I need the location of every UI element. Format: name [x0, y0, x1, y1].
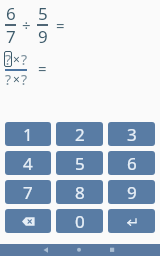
- button[interactable]: 1: [5, 122, 51, 146]
- staticText: 3: [127, 123, 137, 146]
- staticText: =: [56, 15, 65, 35]
- button[interactable]: 9: [108, 180, 155, 204]
- staticText: 8: [75, 181, 85, 204]
- button[interactable]: [108, 209, 155, 233]
- button[interactable]: [5, 209, 51, 233]
- staticText: ?: [21, 70, 28, 89]
- staticText: 1: [23, 123, 33, 146]
- staticText: ?: [5, 50, 12, 69]
- staticText: ×: [13, 51, 20, 67]
- staticText: ?: [21, 50, 28, 69]
- button[interactable]: 5: [56, 151, 103, 175]
- staticText: 7: [23, 181, 33, 204]
- staticText: 5: [38, 2, 48, 25]
- staticText: ÷: [22, 15, 31, 35]
- staticText: 7: [6, 25, 16, 48]
- staticText: 6: [6, 2, 16, 25]
- button[interactable]: 2: [56, 122, 103, 146]
- staticText: ?: [5, 70, 12, 89]
- button[interactable]: 3: [108, 122, 155, 146]
- staticText: =: [38, 58, 47, 78]
- button[interactable]: 7: [5, 180, 51, 204]
- staticText: 0: [75, 210, 85, 233]
- staticText: 2: [75, 123, 85, 146]
- staticText: 4: [23, 152, 33, 175]
- staticText: 6: [127, 152, 137, 175]
- staticText: 5: [75, 152, 85, 175]
- staticText: ×: [13, 71, 20, 87]
- button[interactable]: [0, 244, 160, 256]
- button[interactable]: 0: [56, 209, 103, 233]
- button[interactable]: 8: [56, 180, 103, 204]
- staticText: 9: [38, 25, 48, 48]
- staticText: 9: [127, 181, 137, 204]
- button[interactable]: 4: [5, 151, 51, 175]
- button[interactable]: 6: [108, 151, 155, 175]
